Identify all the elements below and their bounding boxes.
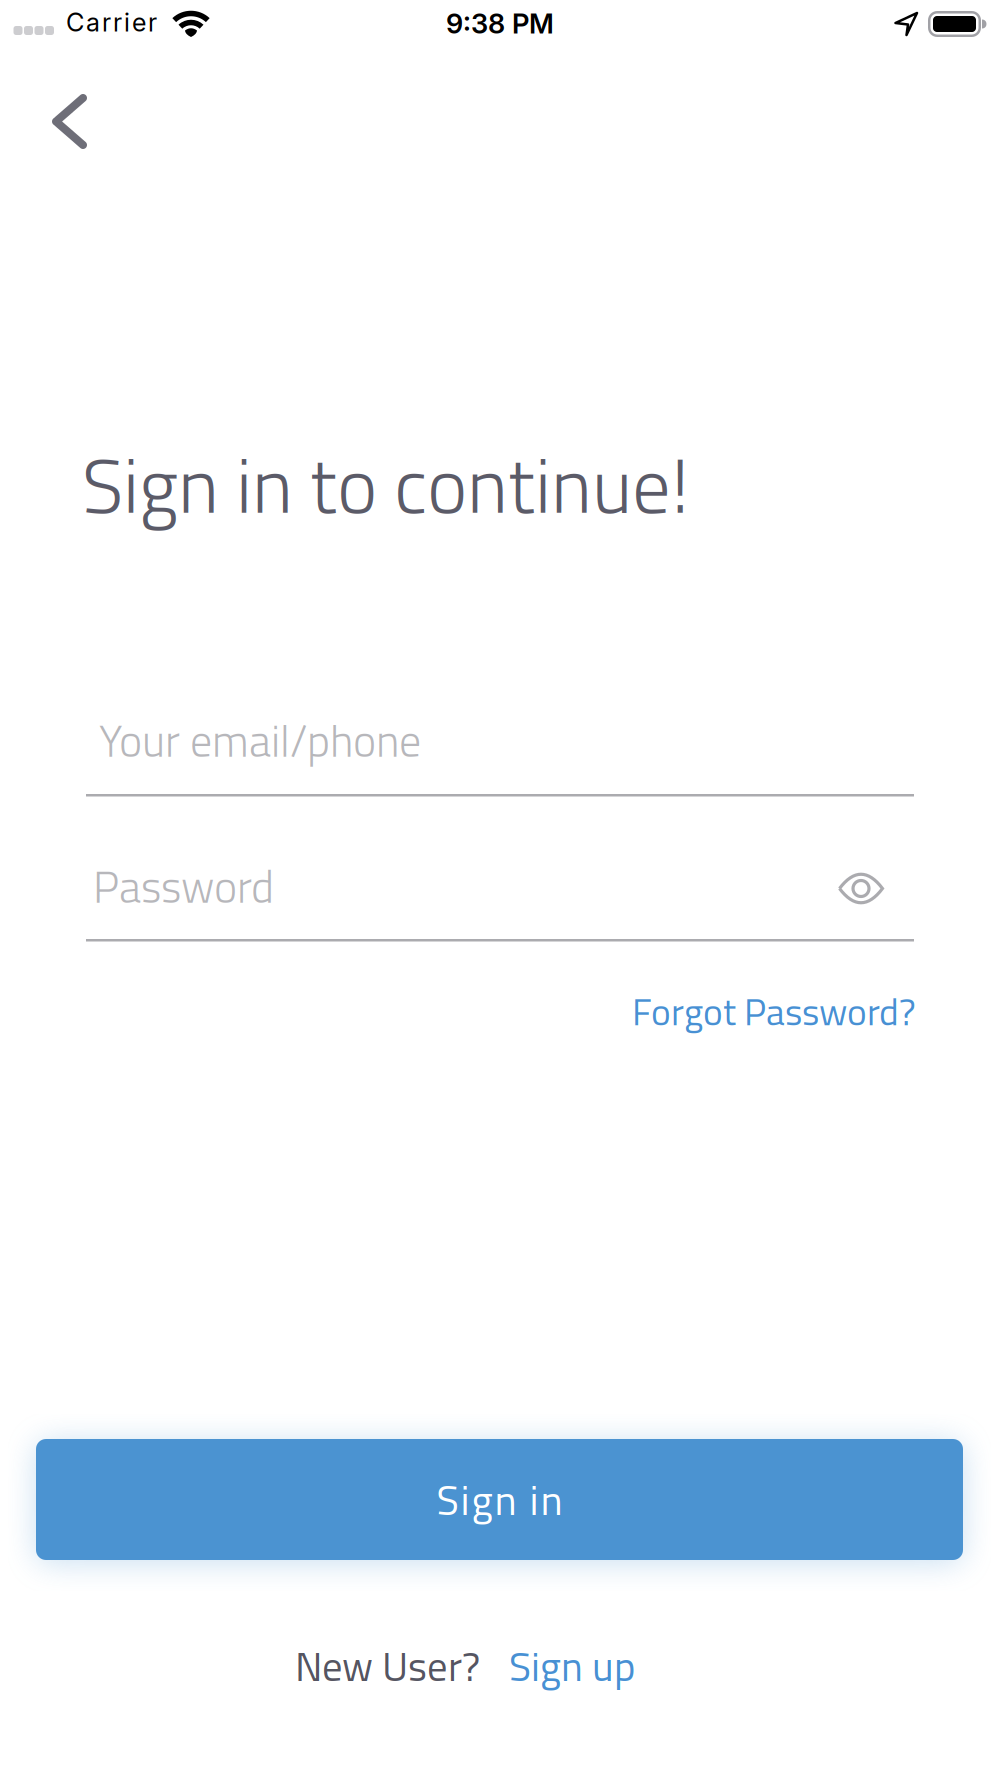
button[interactable]: Sign in — [36, 1439, 963, 1560]
staticText: New User? — [295, 1635, 480, 1697]
staticText: Forgot Password? — [632, 983, 916, 1040]
button[interactable]: Show password — [831, 863, 891, 914]
staticText: Password — [93, 853, 274, 920]
button[interactable]: Forgot Password? — [632, 983, 916, 1040]
button[interactable]: Back — [40, 80, 126, 166]
staticText: Sign up — [509, 1635, 635, 1697]
staticText: Sign in — [436, 1468, 562, 1531]
staticText: C a r r i e r — [66, 7, 157, 38]
staticText: Sign in to continue! — [82, 426, 689, 543]
staticText: 9:38 PM — [446, 7, 554, 40]
staticText: Your email/phone — [99, 707, 421, 774]
button[interactable]: Sign up — [509, 1635, 635, 1697]
